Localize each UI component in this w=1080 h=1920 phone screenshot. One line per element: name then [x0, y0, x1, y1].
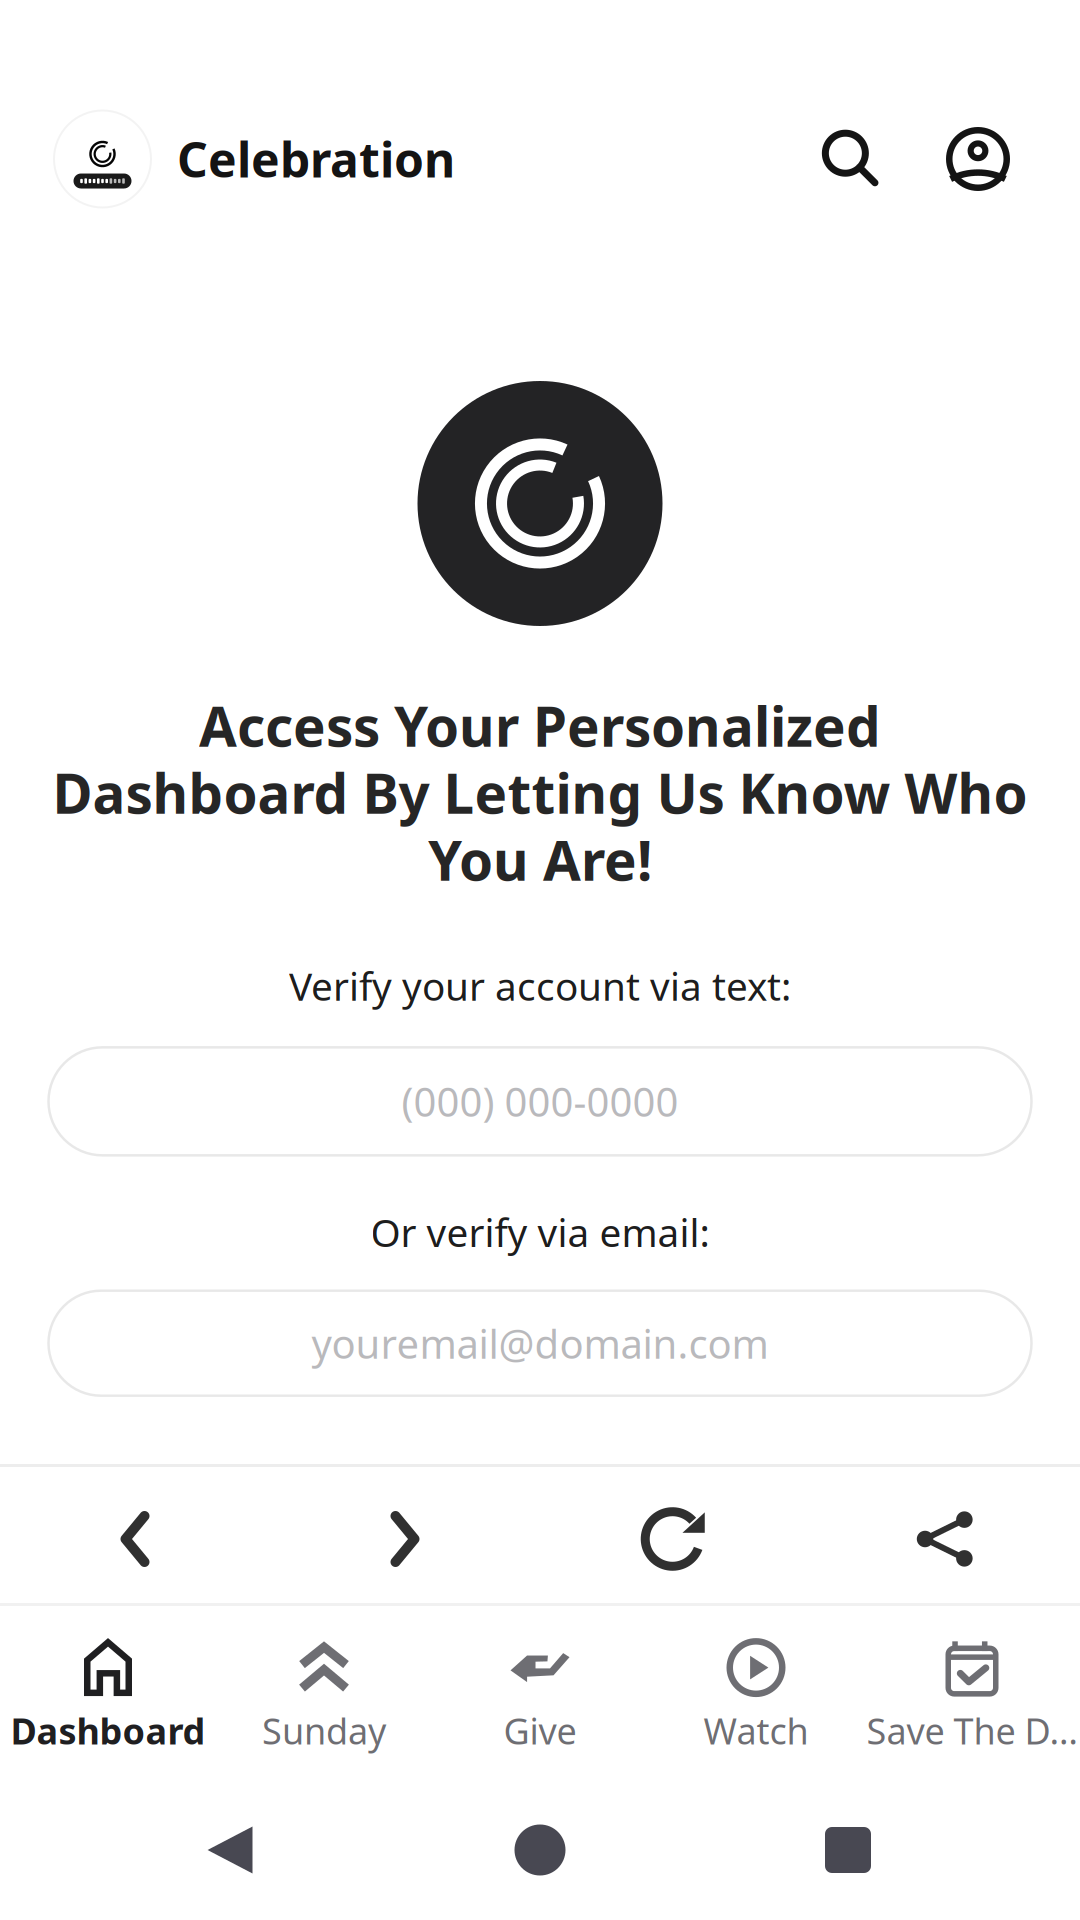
button[interactable]: Share [810, 1467, 1080, 1603]
button[interactable]: Recents [748, 1780, 948, 1920]
staticText: (000) 000-0000 [401, 1075, 678, 1128]
button[interactable]: Account [922, 103, 1034, 215]
button[interactable]: (000) 000-0000 [48, 1047, 1031, 1155]
button[interactable]: Back [0, 1467, 270, 1603]
staticText: Dashboard By Letting Us Know Who [52, 756, 1027, 829]
button[interactable]: Forward [270, 1467, 540, 1603]
button[interactable]: Search [794, 103, 906, 215]
staticText: You Are! [428, 823, 652, 896]
button[interactable]: Home [440, 1780, 640, 1920]
button[interactable]: Dashboard [0, 1618, 216, 1768]
staticText: Access Your Personalized [199, 689, 881, 762]
staticText: Watch [703, 1707, 808, 1754]
button[interactable]: Watch [648, 1618, 864, 1768]
button[interactable]: youremail@domain.com [48, 1291, 1031, 1396]
button[interactable]: Back [130, 1780, 330, 1920]
staticText: Dashboard [10, 1707, 205, 1754]
staticText: Celebration [177, 127, 455, 191]
button[interactable]: Reload [540, 1467, 810, 1603]
button[interactable]: Sunday [216, 1618, 432, 1768]
staticText: Sunday [262, 1707, 386, 1754]
staticText: Save The D… [866, 1707, 1077, 1754]
staticText: youremail@domain.com [311, 1317, 768, 1370]
button[interactable]: Save The D… [864, 1618, 1080, 1768]
button[interactable]: Give [432, 1618, 648, 1768]
staticText: Verify your account via text: [289, 960, 791, 1011]
staticText: Or verify via email: [370, 1206, 709, 1258]
staticText: Give [503, 1707, 576, 1754]
